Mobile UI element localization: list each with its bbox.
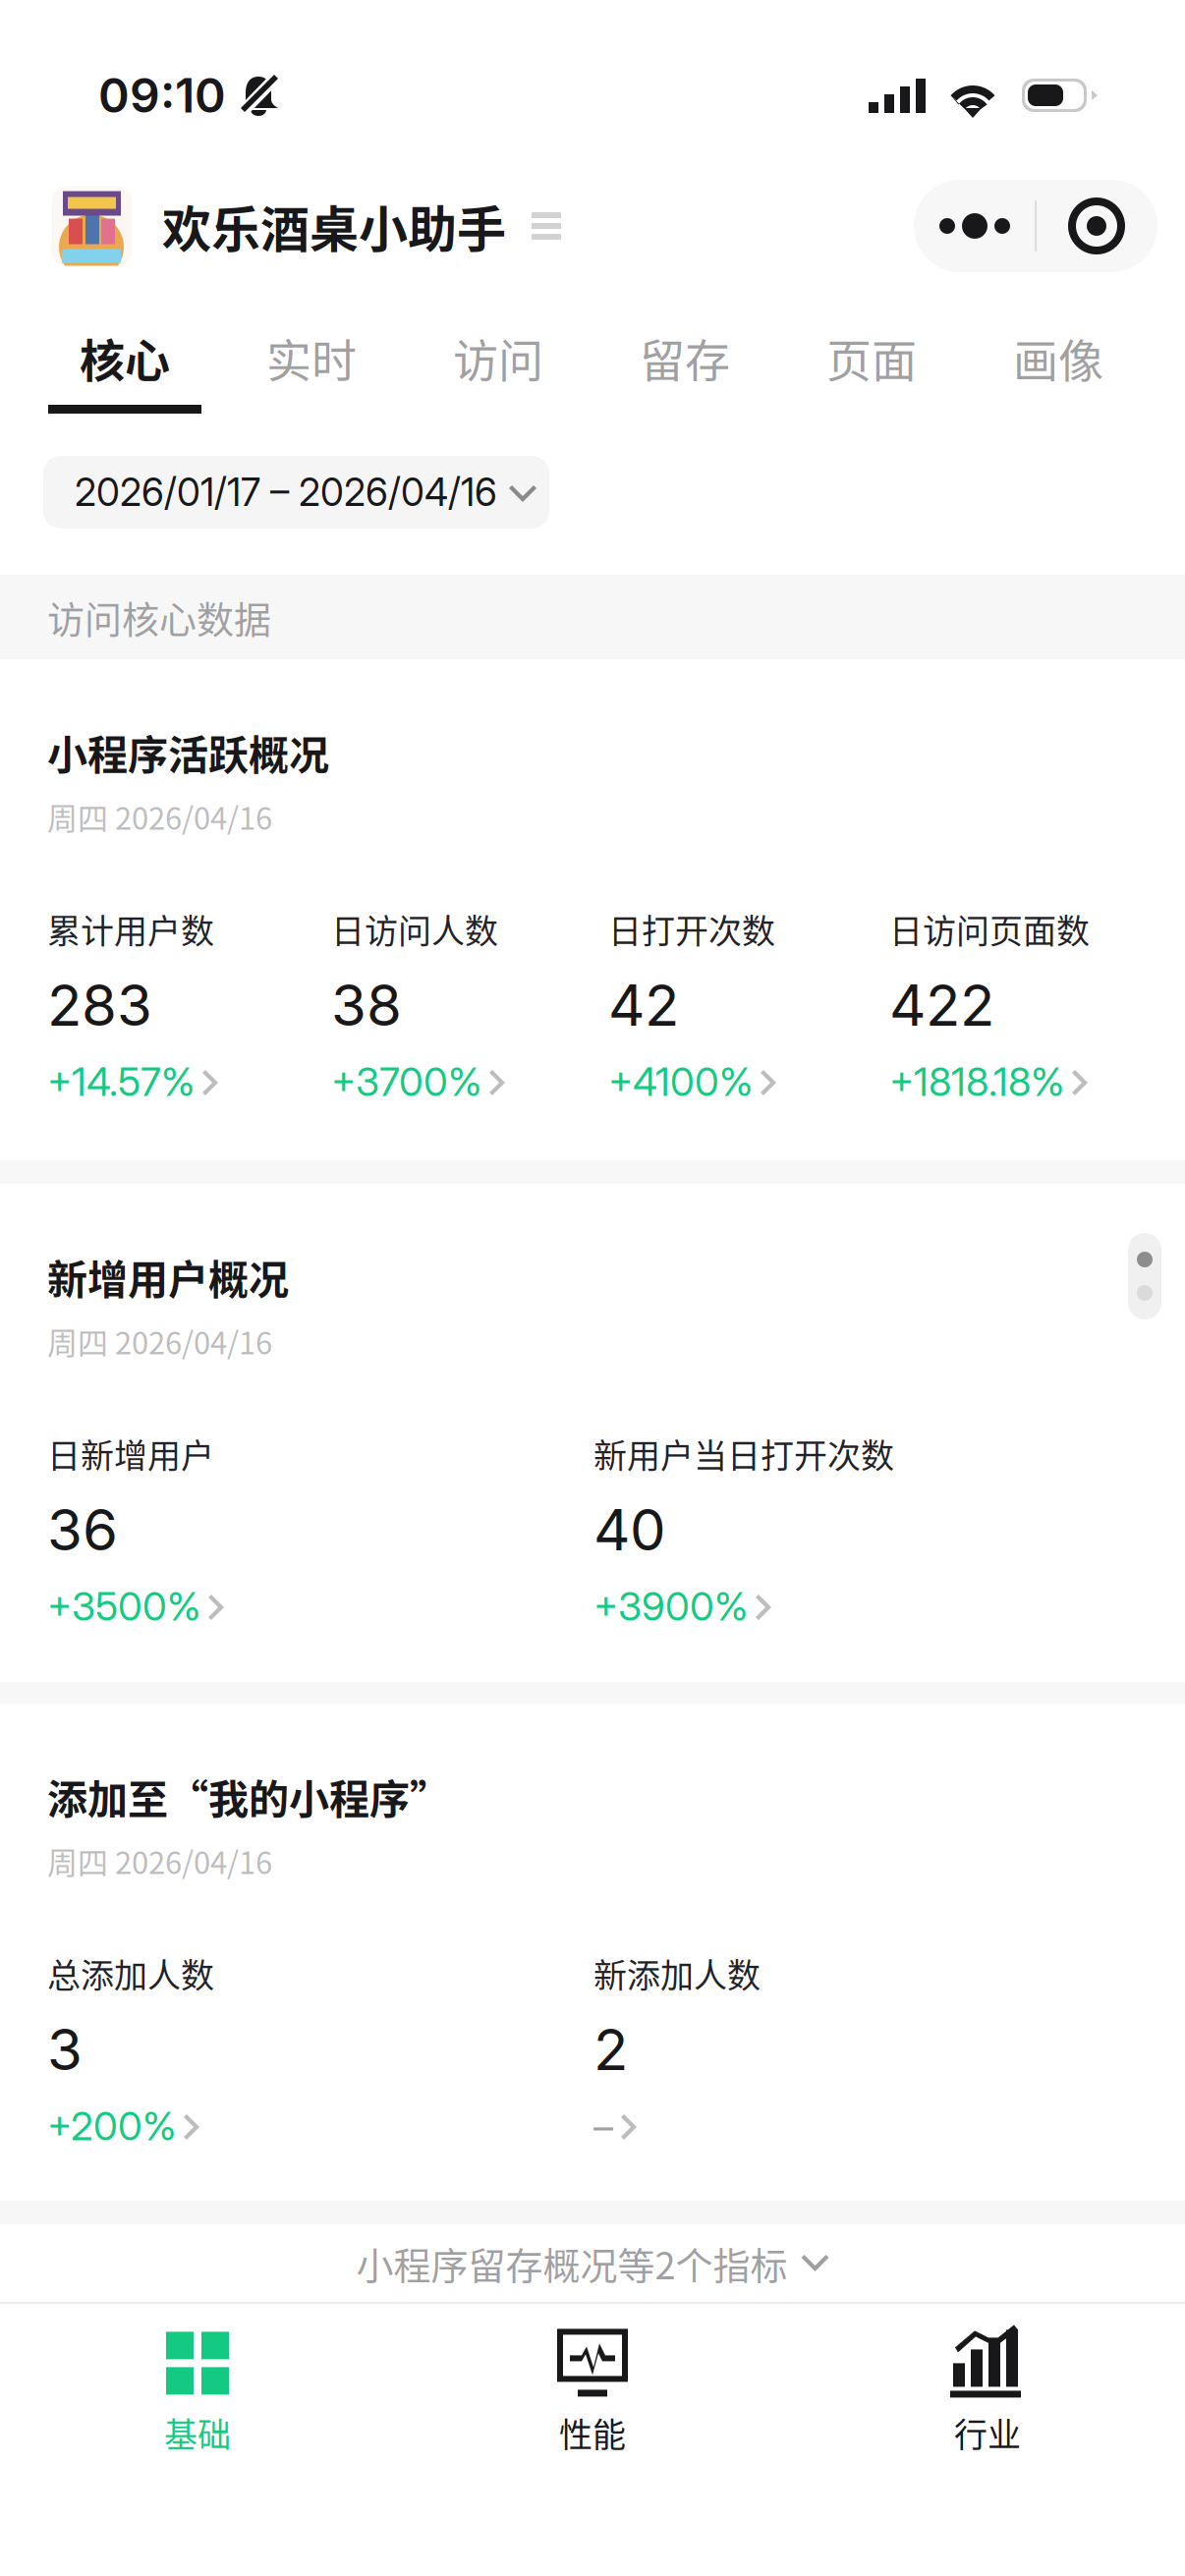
staticText: 累计用户数 — [47, 905, 214, 953]
staticText: 访问核心数据 — [47, 590, 271, 644]
staticText: 日访问页面数 — [889, 905, 1090, 953]
staticText: 38 — [331, 971, 402, 1040]
button[interactable]: 性能 — [395, 2304, 790, 2481]
staticText: 周四 2026/04/16 — [47, 1319, 272, 1363]
button[interactable]: 页面 — [778, 292, 965, 420]
staticText: 283 — [47, 971, 152, 1040]
staticText: 新用户当日打开次数 — [593, 1429, 894, 1478]
staticText: 2026/01/17 – 2026/04/16 — [75, 469, 497, 515]
button[interactable]: 行业 — [790, 2304, 1185, 2481]
button[interactable]: 日新增用户 — [47, 1428, 593, 1632]
staticText: +3500% — [47, 1583, 200, 1630]
staticText: – — [593, 2102, 613, 2150]
staticText: 小程序留存概况等2个指标 — [356, 2236, 788, 2290]
staticText: +200% — [47, 2102, 176, 2150]
button[interactable]: 日访问人数 — [331, 904, 608, 1107]
button[interactable]: 留存 — [592, 292, 778, 420]
staticText: 周四 2026/04/16 — [47, 794, 272, 838]
staticText: 40 — [593, 1495, 666, 1564]
button[interactable]: 2026/01/17 – 2026/04/16 — [43, 456, 549, 529]
button[interactable]: 基础 — [0, 2304, 395, 2481]
button[interactable]: 实时 — [218, 292, 405, 420]
button[interactable]: 总添加人数 — [47, 1948, 593, 2152]
staticText: 添加至“我的小程序” — [47, 1767, 450, 1826]
staticText: +14.57% — [47, 1058, 195, 1105]
staticText: 行业 — [954, 2408, 1021, 2457]
staticText: 周四 2026/04/16 — [47, 1839, 272, 1883]
staticText: 36 — [47, 1495, 118, 1564]
button[interactable]: 日打开次数 — [608, 904, 889, 1107]
button[interactable]: 日访问页面数 — [889, 904, 1164, 1107]
staticText: 小程序活跃概况 — [47, 723, 329, 781]
staticText: +3700% — [331, 1058, 481, 1105]
staticText: 3 — [47, 2015, 83, 2084]
staticText: 总添加人数 — [47, 1949, 214, 1997]
staticText: 日新增用户 — [47, 1429, 214, 1478]
staticText: 实时 — [266, 325, 357, 390]
button[interactable]: 访问 — [405, 292, 592, 420]
button[interactable]: 累计用户数 — [47, 904, 331, 1107]
staticText: 核心 — [80, 325, 170, 390]
staticText: 访问 — [453, 325, 543, 390]
staticText: 基础 — [164, 2408, 231, 2457]
staticText: +3900% — [593, 1583, 748, 1630]
staticText: 422 — [889, 971, 994, 1040]
staticText: 日打开次数 — [608, 905, 775, 953]
staticText: 画像 — [1013, 325, 1103, 390]
button[interactable]: 新用户当日打开次数 — [593, 1428, 1085, 1632]
button[interactable]: 核心 — [31, 292, 218, 420]
staticText: 欢乐酒桌小助手 — [162, 190, 506, 262]
staticText: 新增用户概况 — [47, 1248, 289, 1306]
staticText: 日访问人数 — [331, 905, 498, 953]
button[interactable]: 画像 — [965, 292, 1152, 420]
staticText: 新添加人数 — [593, 1949, 761, 1997]
staticText: 09:10 — [98, 67, 226, 124]
staticText: 性能 — [559, 2408, 626, 2457]
button[interactable]: 小程序留存概况等2个指标 — [0, 2224, 1185, 2302]
staticText: +1818.18% — [889, 1058, 1064, 1105]
button[interactable]: 新添加人数 — [593, 1948, 1085, 2152]
button[interactable]: More options and close — [914, 180, 1157, 272]
staticText: 2 — [593, 2015, 628, 2084]
staticText: 留存 — [640, 325, 730, 390]
staticText: 页面 — [826, 325, 917, 390]
staticText: +4100% — [608, 1058, 753, 1105]
staticText: 42 — [608, 971, 679, 1040]
